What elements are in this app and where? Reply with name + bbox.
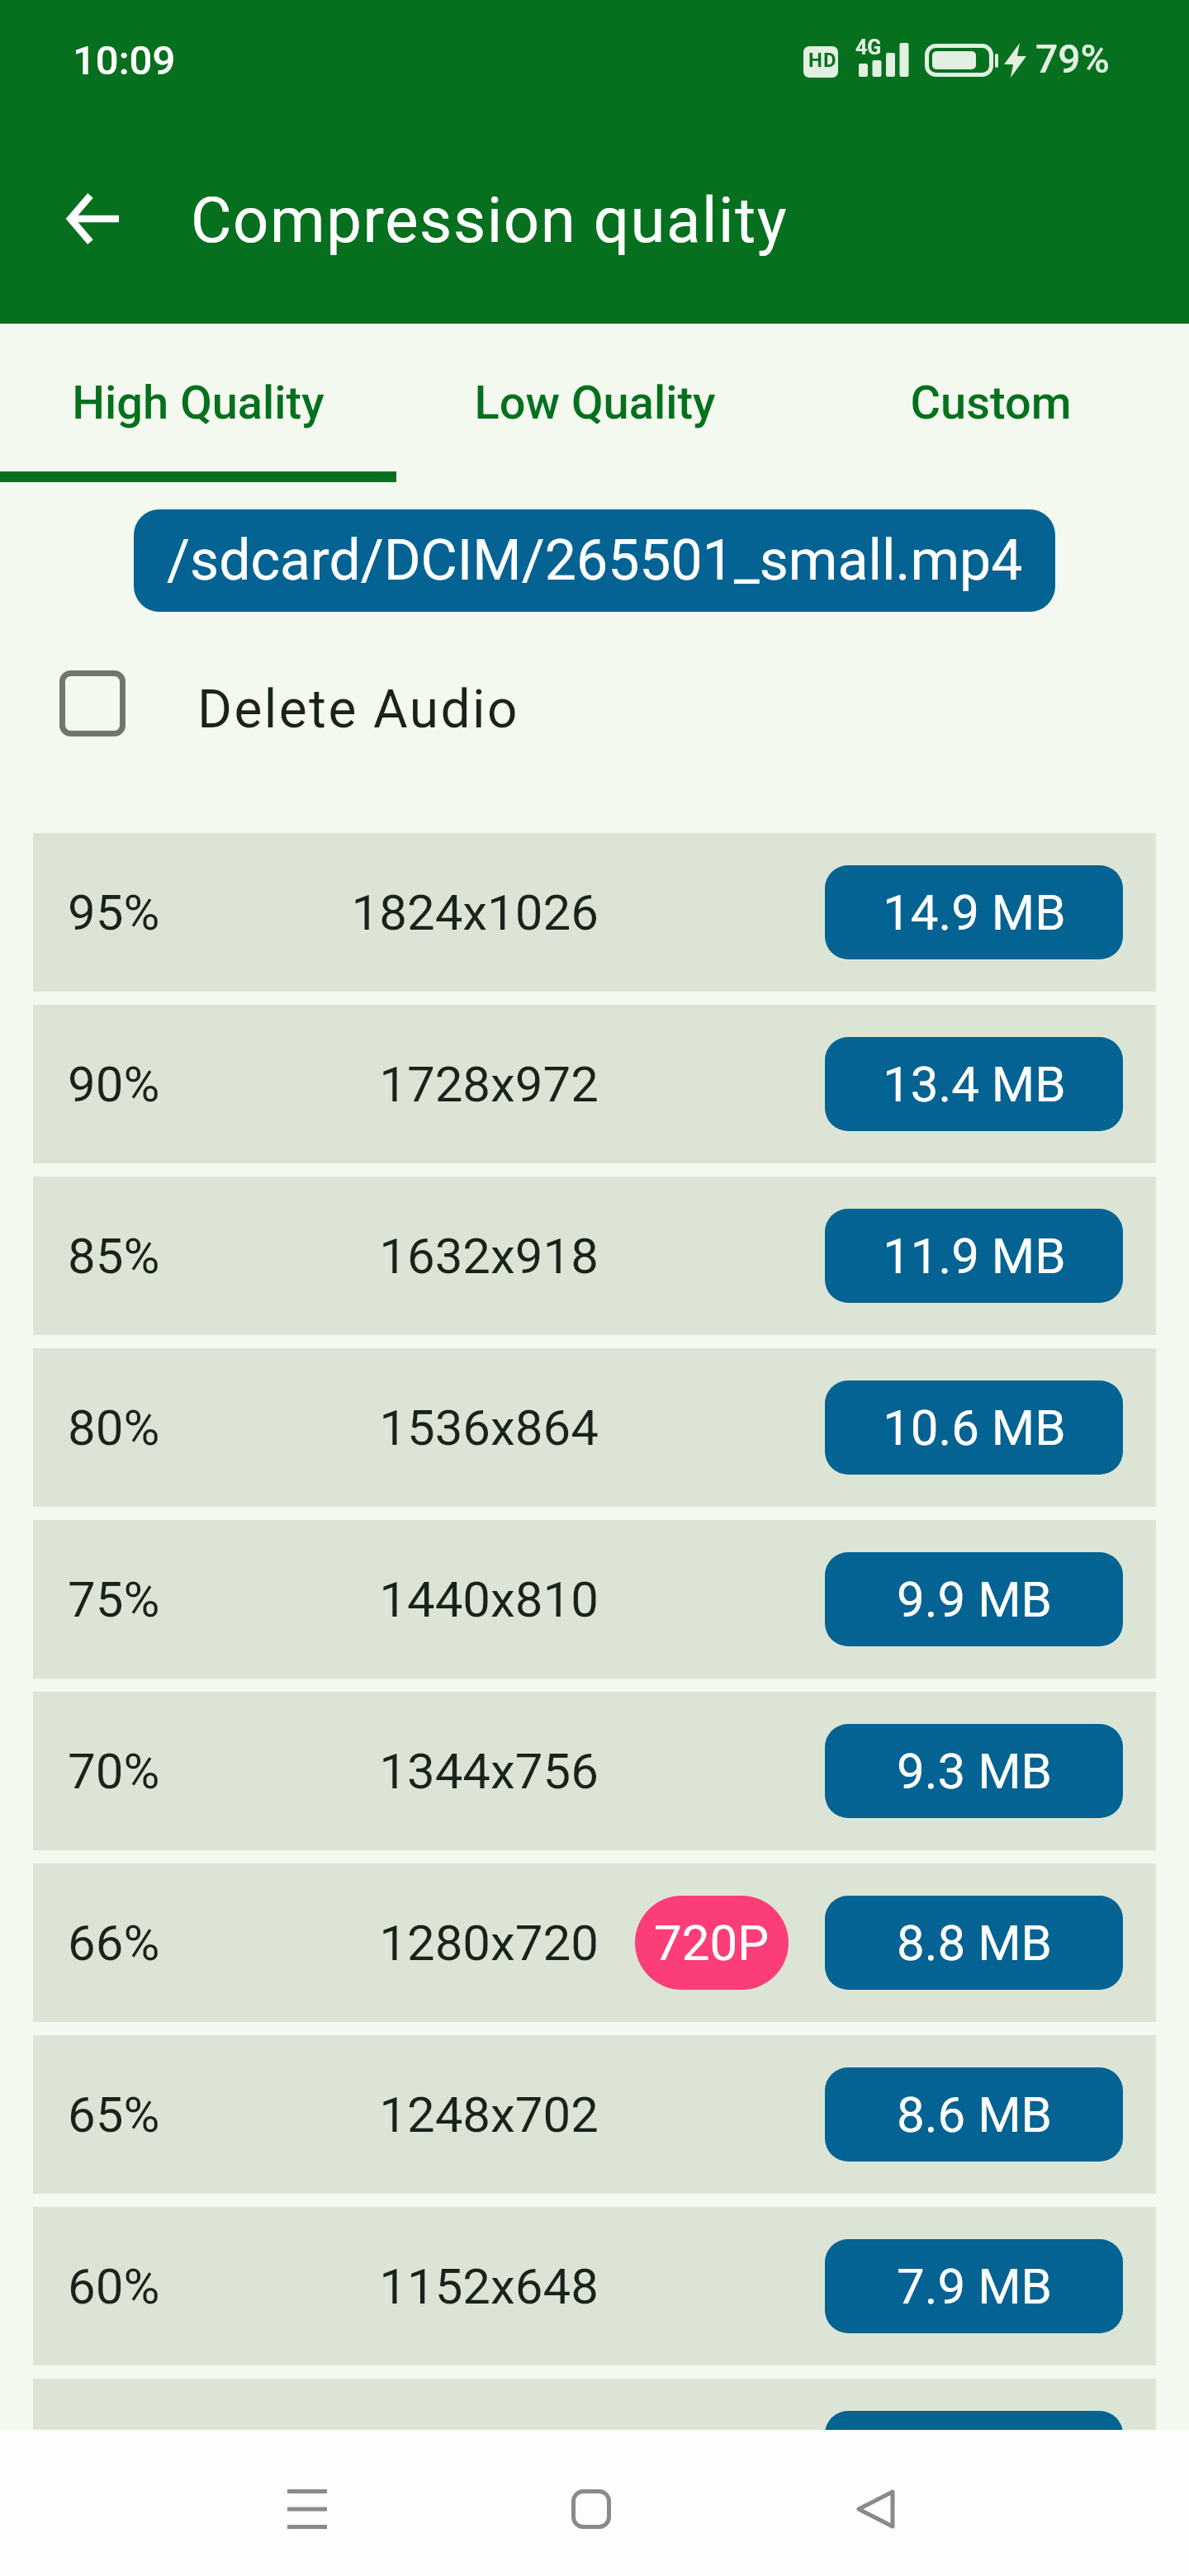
staticText: 9.9 MB [897, 1570, 1052, 1628]
staticText: 65% [68, 2086, 160, 2143]
staticText: Compression quality [191, 183, 789, 257]
button[interactable]: 75% [33, 1520, 1156, 1679]
button[interactable]: 9.9 MB [825, 1552, 1123, 1646]
button[interactable]: 14.9 MB [825, 865, 1123, 959]
staticText: 7.9 MB [897, 2257, 1052, 2315]
button[interactable]: Back [799, 2430, 951, 2576]
staticText: 13.4 MB [883, 1055, 1066, 1113]
staticText: 11.9 MB [883, 1227, 1066, 1285]
button[interactable]: Back [40, 166, 145, 272]
button[interactable]: 13.4 MB [825, 1037, 1123, 1131]
staticText: 1536x864 [379, 1399, 599, 1456]
staticText: 1728x972 [379, 1055, 599, 1113]
button[interactable]: Custom [793, 324, 1189, 482]
staticText: 10.6 MB [883, 1399, 1066, 1456]
staticText: 90% [68, 1055, 160, 1113]
button[interactable]: 80% [33, 1348, 1156, 1507]
staticText: HD [808, 49, 837, 72]
staticText: 7.2 MB [897, 2429, 1052, 2487]
staticText: Delete Audio [197, 679, 519, 741]
staticText: 1440x810 [379, 1570, 599, 1628]
button[interactable]: 8.8 MB [825, 1896, 1123, 1990]
staticText: 4G [855, 36, 882, 59]
button[interactable]: 85% [33, 1177, 1156, 1335]
staticText: 70% [68, 1742, 160, 1800]
button[interactable]: 65% [33, 2035, 1156, 2194]
button[interactable]: 95% [33, 833, 1156, 992]
staticText: 720P [654, 1914, 770, 1972]
staticText: 1344x756 [379, 1742, 599, 1800]
button[interactable]: /sdcard/DCIM/265501_small.mp4 [134, 509, 1055, 612]
button[interactable]: 7.9 MB [825, 2239, 1123, 2333]
staticText: 80% [68, 1399, 160, 1456]
button[interactable]: Low Quality [396, 324, 793, 482]
staticText: 10:09 [73, 37, 176, 84]
button[interactable]: 70% [33, 1692, 1156, 1850]
staticText: 9.3 MB [897, 1742, 1052, 1800]
staticText: 95% [68, 883, 160, 941]
button[interactable]: 90% [33, 1005, 1156, 1163]
staticText: 75% [68, 1570, 160, 1628]
button[interactable]: Recent apps [231, 2430, 383, 2576]
staticText: 8.6 MB [897, 2086, 1052, 2143]
button[interactable]: 60% [33, 2207, 1156, 2365]
button[interactable]: 7.2 MB [825, 2411, 1123, 2505]
staticText: 1632x918 [379, 1227, 599, 1285]
staticText: High Quality [72, 376, 324, 430]
button[interactable]: 66% [33, 1863, 1156, 2022]
staticText: Low Quality [474, 376, 716, 430]
staticText: 66% [68, 1914, 160, 1972]
button[interactable]: 9.3 MB [825, 1724, 1123, 1818]
button[interactable]: 8.6 MB [825, 2067, 1123, 2162]
staticText: 1248x702 [379, 2086, 599, 2143]
staticText: /sdcard/DCIM/265501_small.mp4 [167, 528, 1023, 594]
staticText: 60% [68, 2257, 160, 2315]
staticText: Custom [910, 376, 1072, 430]
staticText: 1824x1026 [351, 883, 599, 941]
button[interactable]: Home [515, 2430, 667, 2576]
staticText: 79% [1035, 36, 1110, 82]
staticText: 14.9 MB [883, 883, 1066, 941]
staticText: 1280x720 [379, 1914, 599, 1972]
staticText: 1056x594 [379, 2429, 599, 2487]
button[interactable]: 10.6 MB [825, 1380, 1123, 1475]
button[interactable]: Delete Audio [0, 666, 1189, 741]
button[interactable]: 55% [33, 2379, 1156, 2537]
staticText: 1152x648 [379, 2257, 599, 2315]
button[interactable]: High Quality [0, 324, 396, 482]
staticText: 55% [68, 2429, 160, 2487]
staticText: 8.8 MB [897, 1914, 1052, 1972]
staticText: 85% [68, 1227, 160, 1285]
button[interactable]: 11.9 MB [825, 1209, 1123, 1303]
